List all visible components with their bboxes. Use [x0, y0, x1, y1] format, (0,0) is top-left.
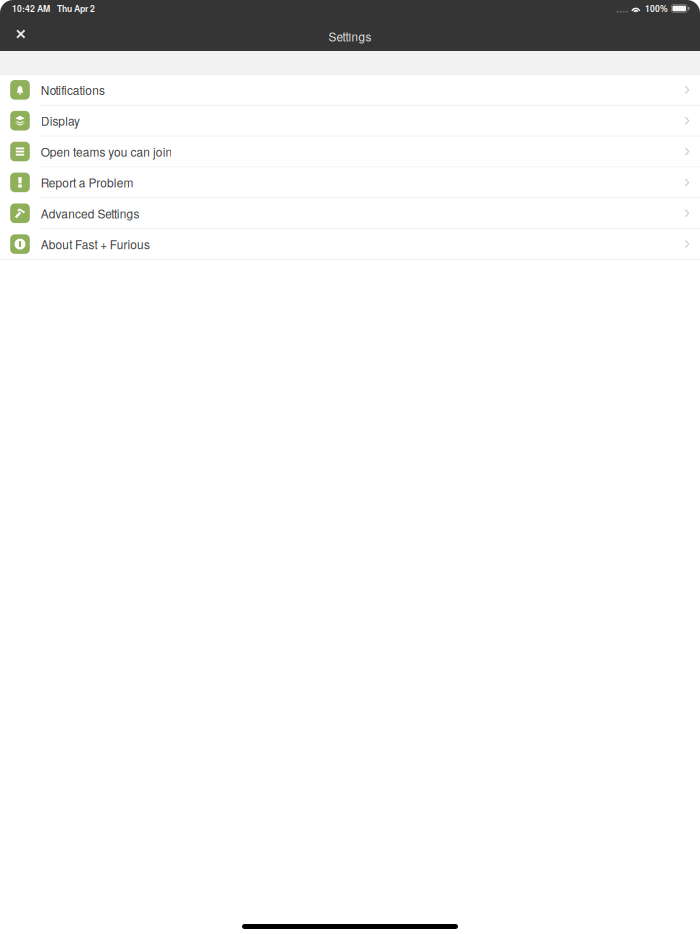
staticText: About Fast + Furious — [41, 236, 150, 253]
button[interactable]: Advanced Settings — [0, 198, 700, 229]
staticText: Report a Problem — [41, 174, 133, 191]
staticText: 10:42 AM — [12, 2, 50, 15]
staticText: 100% — [645, 2, 668, 15]
staticText: Open teams you can join — [41, 143, 172, 160]
staticText: Settings — [328, 28, 371, 45]
button[interactable]: Report a Problem — [0, 167, 700, 198]
button[interactable]: Close — [8, 22, 33, 46]
staticText: Advanced Settings — [41, 205, 139, 222]
button[interactable]: Notifications — [0, 75, 700, 106]
button[interactable]: Open teams you can join — [0, 136, 700, 167]
staticText: Display — [41, 112, 80, 129]
staticText: Thu Apr 2 — [57, 2, 95, 15]
staticText: Notifications — [41, 81, 105, 98]
button[interactable]: About Fast + Furious — [0, 229, 700, 260]
button[interactable]: Display — [0, 106, 700, 137]
